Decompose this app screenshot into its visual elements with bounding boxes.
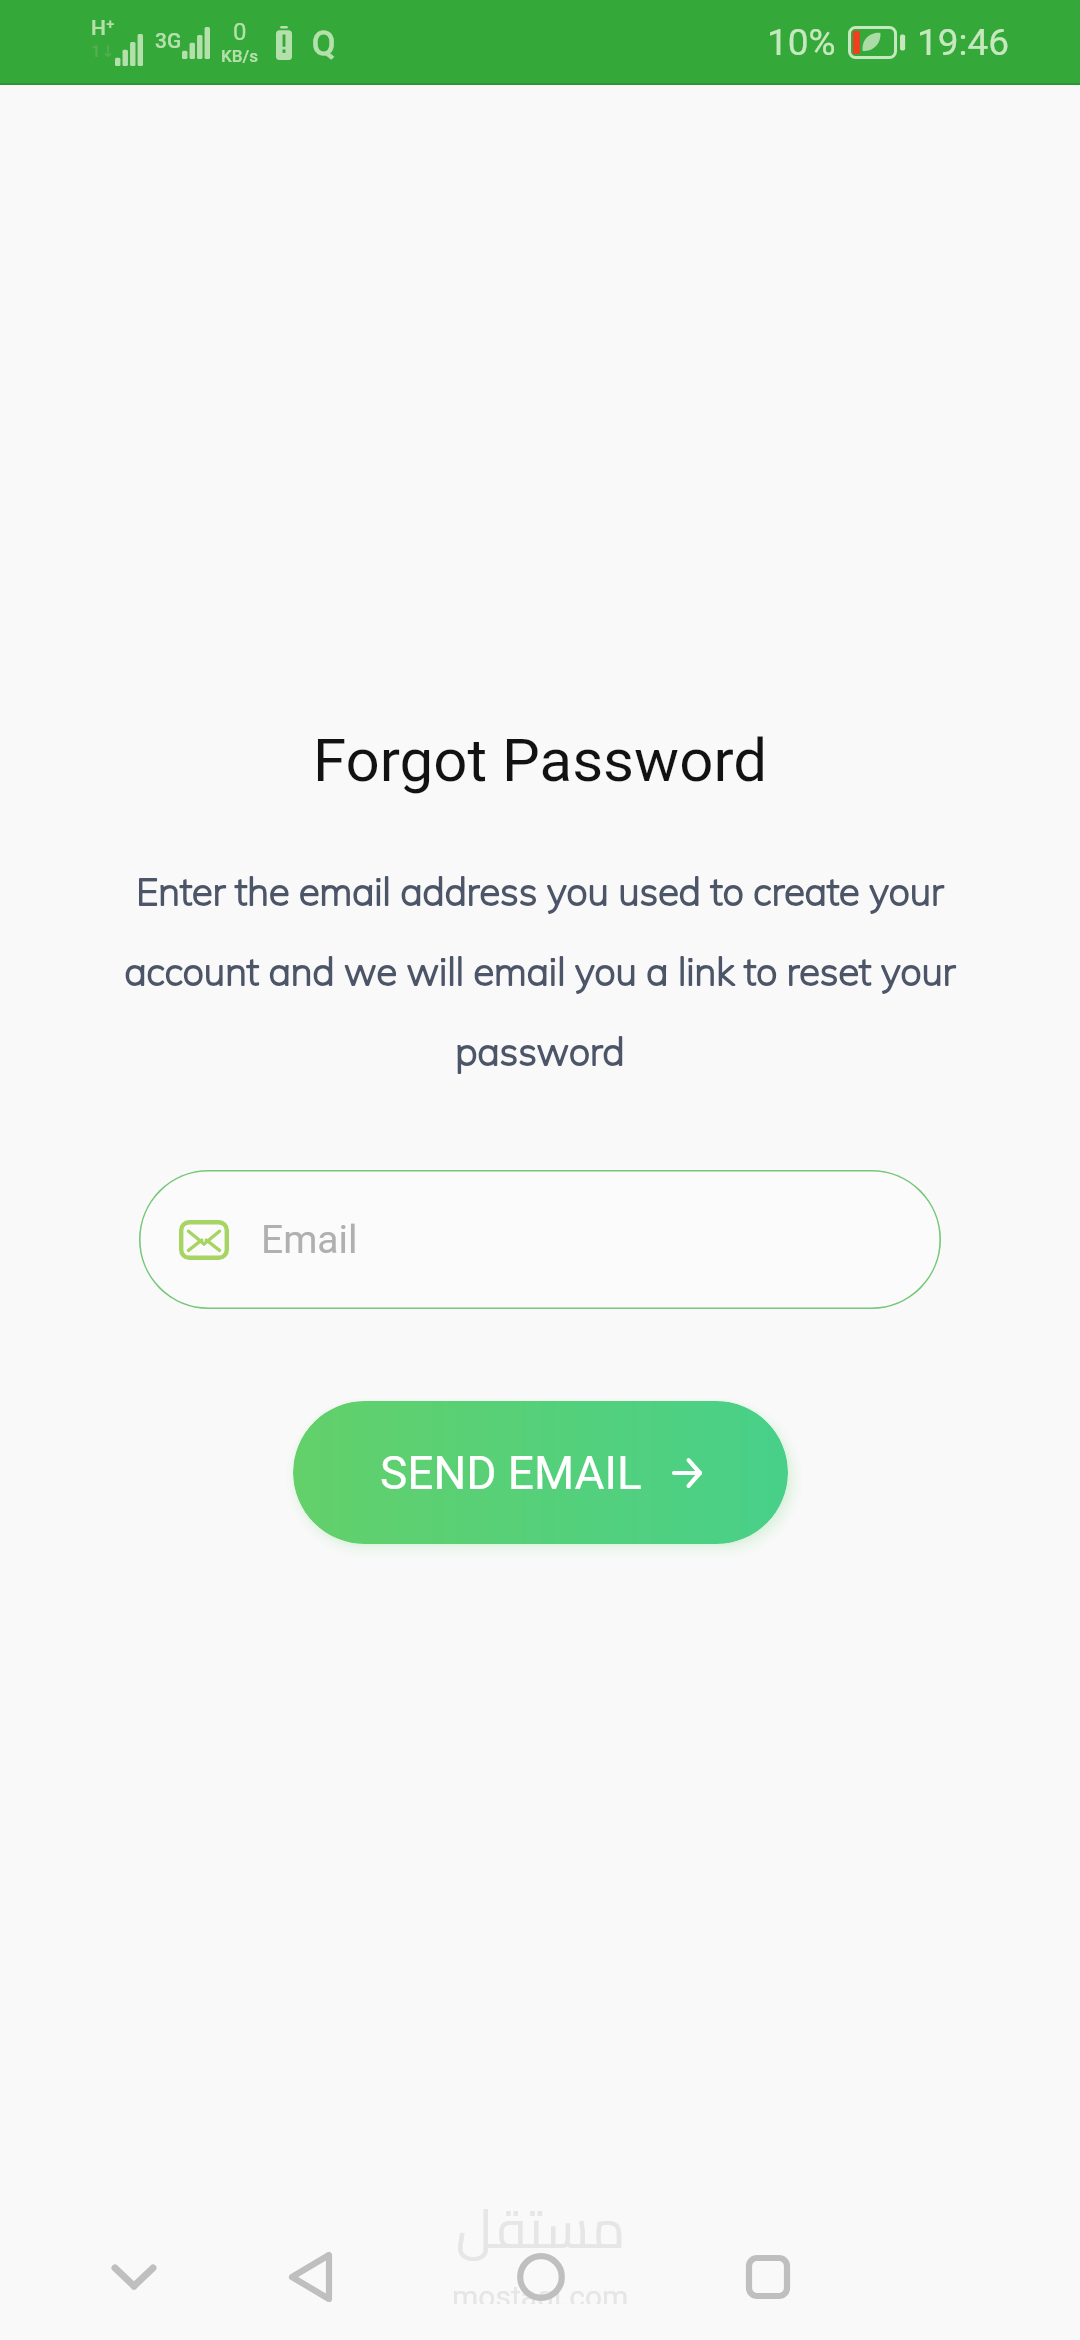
button[interactable]: Hide keyboard (79, 2222, 189, 2332)
staticText: KB/s (221, 46, 258, 66)
staticText: Q (312, 23, 336, 63)
button[interactable]: Email (139, 1170, 941, 1309)
staticText: 10% (767, 21, 836, 64)
staticText: Enter the email address you used to crea… (110, 867, 970, 1075)
button[interactable]: SEND EMAIL (293, 1401, 788, 1544)
staticText: 1↓ (91, 41, 115, 61)
staticText: Email (261, 1217, 358, 1263)
button[interactable]: Back (255, 2222, 365, 2332)
staticText: Forgot Password (313, 725, 767, 795)
staticText: 3G (155, 29, 182, 54)
button[interactable]: Recents (713, 2222, 823, 2332)
staticText: H⁺ (91, 16, 115, 41)
staticText: mostaql.com (452, 2279, 629, 2304)
staticText: Enter the email address you used to crea… (110, 867, 970, 1075)
button[interactable]: Home (486, 2222, 596, 2332)
staticText: 0 (233, 18, 247, 46)
staticText: مستقل (456, 2178, 626, 2279)
staticText: 19:46 (917, 21, 1010, 64)
staticText: SEND EMAIL (380, 1446, 642, 1500)
